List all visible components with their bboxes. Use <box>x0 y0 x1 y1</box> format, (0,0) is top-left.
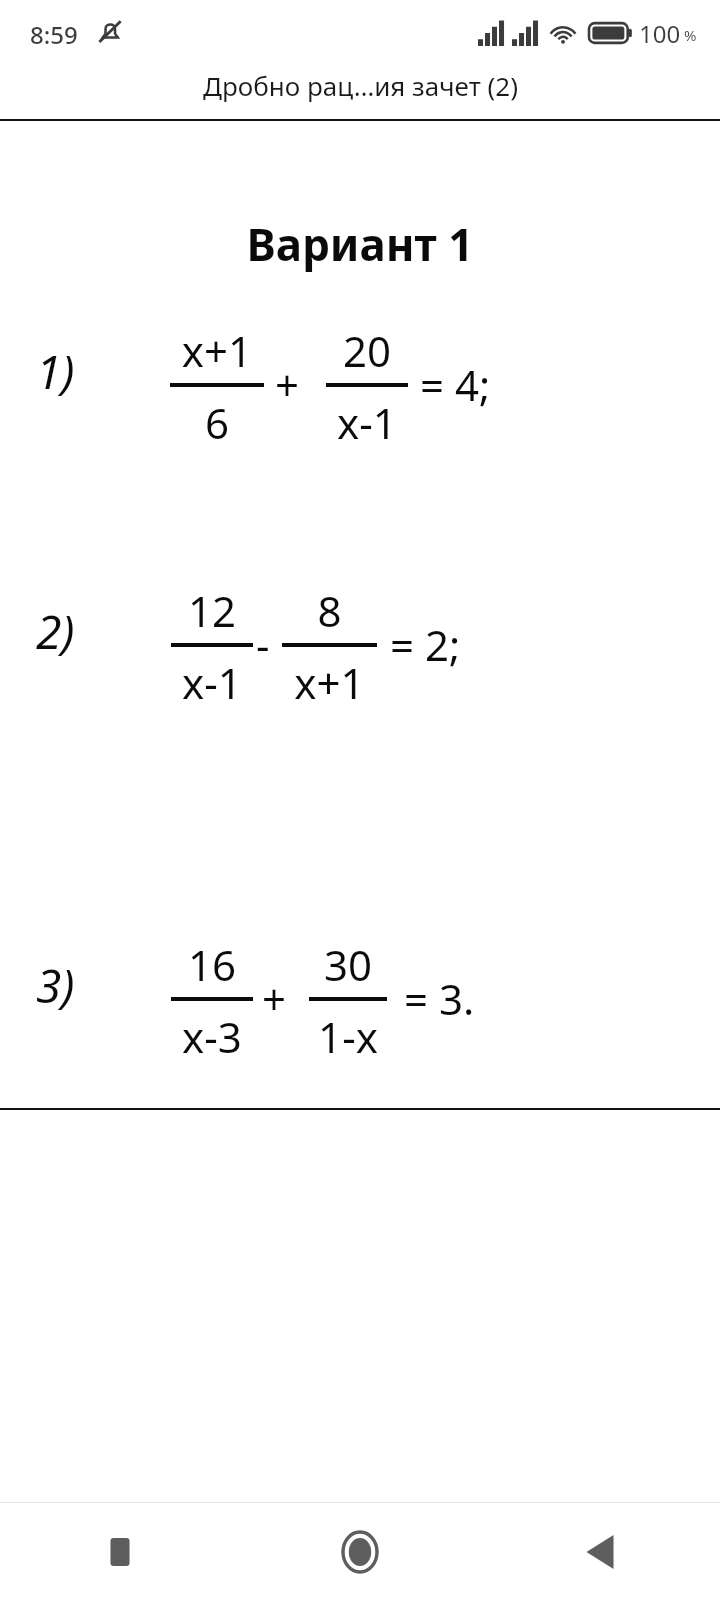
staticText: - <box>256 616 270 673</box>
button[interactable]: Дробно рац…ия зачет (2) <box>0 52 720 118</box>
staticText: 16 <box>171 936 253 993</box>
staticText: x-1 <box>326 394 408 451</box>
staticText: 8:59 <box>30 18 78 51</box>
button[interactable]: 1) <box>36 340 75 403</box>
staticText: 20 <box>326 322 408 379</box>
staticText: 2) <box>36 600 75 663</box>
staticText: x-3 <box>171 1008 253 1065</box>
staticText: 100 <box>639 17 681 50</box>
staticText: + <box>275 356 300 413</box>
button[interactable]: Back <box>480 1503 720 1600</box>
staticText: 1) <box>36 340 75 403</box>
staticText: 30 <box>309 936 387 993</box>
staticText: 3) <box>36 954 75 1017</box>
button[interactable]: 2) <box>36 600 75 663</box>
button[interactable]: Home <box>240 1503 480 1600</box>
staticText: x-1 <box>171 654 253 711</box>
staticText: x+1 <box>170 322 264 379</box>
staticText: = 3. <box>404 970 475 1027</box>
staticText: % <box>684 25 697 45</box>
staticText: Дробно рац…ия зачет (2) <box>203 68 518 103</box>
staticText: + <box>262 970 287 1027</box>
staticText: Вариант 1 <box>0 214 720 274</box>
button[interactable]: Recent apps <box>0 1503 240 1600</box>
staticText: = 4; <box>420 356 491 413</box>
staticText: 12 <box>171 582 253 639</box>
button[interactable]: 3) <box>36 954 75 1017</box>
staticText: 8 <box>282 582 377 639</box>
staticText: 1-x <box>309 1008 387 1065</box>
staticText: = 2; <box>390 616 461 673</box>
staticText: 6 <box>170 394 264 451</box>
staticText: x+1 <box>282 654 377 711</box>
